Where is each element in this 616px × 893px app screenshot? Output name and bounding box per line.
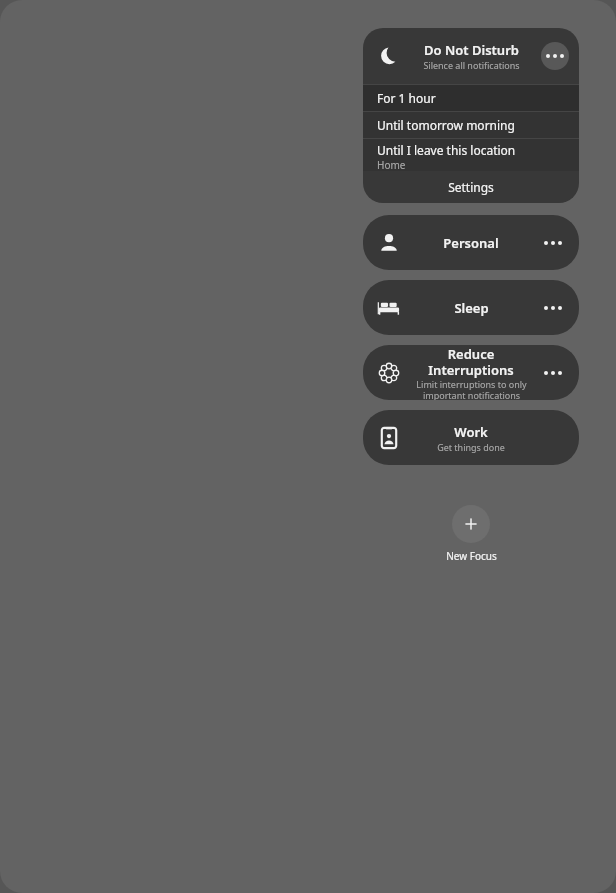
staticText: Silence all notifications — [423, 59, 520, 71]
button[interactable]: Personal — [363, 215, 579, 270]
button[interactable]: New Focus — [452, 505, 490, 543]
staticText: Settings — [448, 179, 494, 195]
staticText: Get things done — [437, 441, 505, 453]
staticText: Sleep — [454, 299, 489, 317]
button[interactable]: More options — [541, 42, 569, 70]
button[interactable]: Reduce Interruptions — [363, 345, 579, 400]
staticText: Until tomorrow morning — [377, 117, 515, 133]
button[interactable]: More options for Personal — [535, 225, 571, 261]
button[interactable]: Settings — [363, 171, 579, 203]
staticText: Personal — [443, 234, 499, 252]
staticText: For 1 hour — [377, 90, 436, 106]
staticText: Reduce Interruptions — [409, 345, 533, 378]
button[interactable]: Until tomorrow morning — [363, 112, 579, 138]
staticText: Limit interruptions to only important no… — [416, 378, 527, 400]
button[interactable]: Until I leave this location — [363, 139, 579, 171]
staticText: Home — [377, 158, 406, 171]
button[interactable]: Sleep — [363, 280, 579, 335]
button[interactable]: More options for Reduce Interruptions — [535, 355, 571, 391]
staticText: New Focus — [446, 549, 497, 563]
button[interactable]: Work — [363, 410, 579, 465]
button[interactable]: More options for Sleep — [535, 290, 571, 326]
staticText: Do Not Disturb — [424, 41, 519, 59]
button[interactable]: For 1 hour — [363, 85, 579, 111]
staticText: Until I leave this location — [377, 142, 516, 158]
button[interactable]: Do Not Disturb — [363, 28, 579, 84]
staticText: Work — [454, 423, 488, 441]
